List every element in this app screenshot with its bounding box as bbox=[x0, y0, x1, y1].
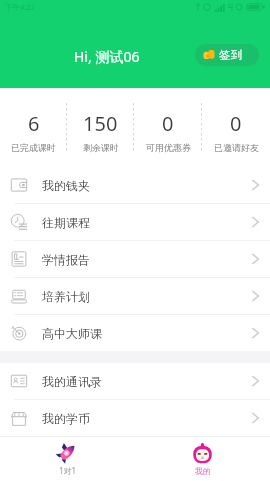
staticText: 我的学币 bbox=[42, 411, 90, 426]
staticText: 签到 bbox=[219, 48, 242, 62]
staticText: Hi, 测试06 bbox=[74, 47, 140, 66]
staticText: 高中大师课 bbox=[42, 326, 102, 341]
button[interactable]: 学情报告 bbox=[0, 241, 270, 278]
staticText: 已邀请好友 bbox=[214, 142, 259, 153]
staticText: 剩余课时 bbox=[83, 142, 119, 153]
staticText: 我的钱夹 bbox=[42, 178, 90, 193]
staticText: 我的 bbox=[195, 466, 211, 476]
staticText: 培养计划 bbox=[42, 289, 90, 304]
button[interactable]: 我的学币 bbox=[0, 400, 270, 436]
button[interactable]: 我的通讯录 bbox=[0, 363, 270, 400]
button[interactable]: 高中大师课 bbox=[0, 315, 270, 351]
staticText: 6 bbox=[28, 110, 40, 137]
staticText: 下午4:22 bbox=[5, 2, 35, 12]
button[interactable]: 1对1 bbox=[0, 437, 135, 481]
staticText: 往期课程 bbox=[42, 215, 90, 230]
button[interactable]: 我的钱夹 bbox=[0, 167, 270, 204]
button[interactable]: 培养计划 bbox=[0, 278, 270, 315]
staticText: 我的通讯录 bbox=[42, 374, 102, 389]
staticText: 学情报告 bbox=[42, 252, 90, 267]
staticText: 150 bbox=[83, 110, 118, 137]
button[interactable]: 签到 bbox=[195, 44, 259, 66]
staticText: 0 bbox=[162, 110, 174, 137]
staticText: 0 bbox=[230, 110, 242, 137]
staticText: 已完成课时 bbox=[11, 142, 56, 153]
button[interactable]: 往期课程 bbox=[0, 204, 270, 241]
button[interactable]: 我的 bbox=[135, 437, 270, 481]
staticText: 1对1 bbox=[59, 465, 77, 476]
staticText: 可用优惠券 bbox=[146, 142, 191, 153]
